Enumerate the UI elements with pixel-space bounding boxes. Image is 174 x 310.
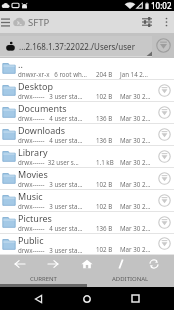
staticText: 136 B bbox=[96, 224, 111, 232]
button[interactable]: Pictures bbox=[0, 212, 174, 234]
button[interactable]: Download Movies bbox=[156, 168, 172, 188]
staticText: Mar 30 2... bbox=[120, 136, 151, 144]
button[interactable]: Refresh bbox=[140, 255, 168, 272]
staticText: Mar 30 2... bbox=[120, 158, 151, 166]
button[interactable]: Back bbox=[6, 255, 34, 272]
button[interactable]: Back bbox=[14, 287, 62, 310]
staticText: 102 B bbox=[96, 92, 111, 100]
staticText: 102 B bbox=[96, 202, 111, 210]
button[interactable]: Desktop bbox=[0, 80, 174, 102]
staticText: Library bbox=[18, 146, 48, 158]
staticText: ADDITIONAL bbox=[112, 275, 149, 283]
staticText: drwx------ 4 user sta... bbox=[18, 136, 83, 144]
staticText: CURRENT bbox=[30, 275, 57, 283]
staticText: Public bbox=[18, 234, 44, 246]
staticText: dnwxr-xr-x 6 root wh... bbox=[18, 70, 87, 78]
button[interactable]: CURRENT bbox=[0, 272, 87, 287]
staticText: Mar 30 2... bbox=[120, 180, 151, 188]
staticText: 136 B bbox=[96, 136, 111, 144]
staticText: drwx------ 3 user sta... bbox=[18, 92, 83, 100]
staticText: drwx------ 3 user sta... bbox=[18, 180, 83, 188]
button[interactable]: Download Pictures bbox=[156, 212, 172, 232]
staticText: .. bbox=[18, 58, 23, 70]
button[interactable]: Home bbox=[62, 287, 111, 310]
staticText: Music bbox=[18, 190, 43, 202]
button[interactable]: Download Downloads bbox=[156, 124, 172, 144]
button[interactable]: .. bbox=[0, 58, 174, 80]
staticText: 10:02 bbox=[151, 0, 172, 11]
button[interactable]: Download Desktop bbox=[156, 80, 172, 100]
button[interactable]: Download Library bbox=[156, 146, 172, 166]
staticText: Pictures bbox=[18, 212, 52, 224]
staticText: 136 B bbox=[96, 114, 111, 122]
staticText: Downloads bbox=[18, 124, 66, 136]
button[interactable]: Public bbox=[0, 234, 174, 255]
button[interactable]: Open navigation drawer bbox=[0, 11, 11, 33]
button[interactable]: Library bbox=[0, 146, 174, 168]
staticText: drwx------ 32 user s... bbox=[18, 158, 79, 166]
button[interactable]: Filter settings bbox=[136, 11, 158, 33]
staticText: 102 B bbox=[96, 245, 111, 253]
button[interactable]: Forward bbox=[39, 255, 67, 272]
button[interactable]: Download Public bbox=[156, 234, 172, 253]
staticText: Mar 30 2... bbox=[120, 224, 151, 232]
button[interactable]: Home bbox=[73, 255, 101, 272]
staticText: Jan 14 2... bbox=[120, 70, 148, 78]
button[interactable]: Root directory bbox=[107, 255, 135, 272]
button[interactable]: Recent apps bbox=[111, 287, 160, 310]
staticText: 102 B bbox=[96, 180, 111, 188]
staticText: drwx------ 4 user sta... bbox=[18, 114, 83, 122]
staticText: Mar 30 2... bbox=[120, 202, 151, 210]
button[interactable]: ADDITIONAL bbox=[87, 272, 174, 287]
button[interactable]: ...2.168.1.37:22022./Users/user bbox=[0, 36, 152, 57]
staticText: Mar 30 2... bbox=[120, 92, 151, 100]
staticText: SFTP bbox=[28, 16, 50, 29]
button[interactable]: Downloads bbox=[0, 124, 174, 146]
staticText: drwx------ 4 user sta... bbox=[18, 224, 83, 232]
staticText: drwx------ 3 user sta... bbox=[18, 202, 83, 210]
button[interactable]: Download Music bbox=[156, 190, 172, 210]
staticText: Movies bbox=[18, 168, 48, 180]
button[interactable]: Music bbox=[0, 190, 174, 212]
staticText: Mar 30 2... bbox=[120, 245, 151, 253]
button[interactable]: Documents bbox=[0, 102, 174, 124]
button[interactable]: More options bbox=[158, 11, 174, 33]
staticText: Mar 30 2... bbox=[120, 114, 151, 122]
button[interactable]: Movies bbox=[0, 168, 174, 190]
staticText: ...2.168.1.37:22022./Users/user bbox=[19, 41, 135, 52]
staticText: Documents bbox=[18, 102, 67, 114]
staticText: 204 B bbox=[96, 70, 111, 78]
staticText: drwx------ 3 user sta... bbox=[18, 246, 83, 253]
button[interactable]: Download Documents bbox=[156, 102, 172, 122]
staticText: 1.1 kB bbox=[96, 158, 111, 166]
button[interactable]: Download bbox=[152, 33, 174, 58]
staticText: Desktop bbox=[18, 80, 53, 92]
